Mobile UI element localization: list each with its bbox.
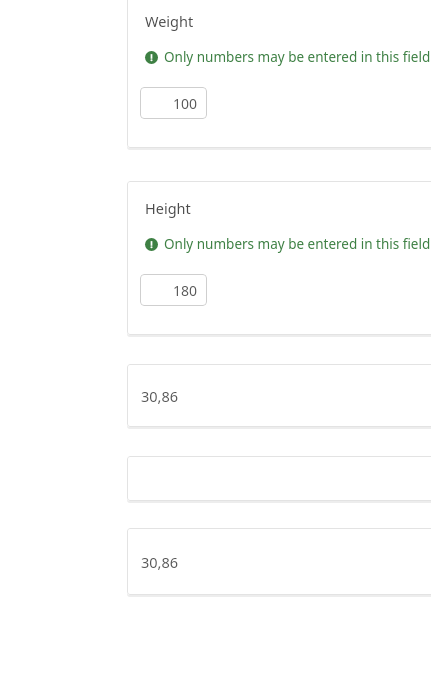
button[interactable]: 30,86 — [127, 364, 431, 427]
button[interactable]: Height — [127, 181, 431, 335]
staticText: Only numbers may be entered in this fiel… — [164, 48, 431, 66]
staticText: Weight — [145, 11, 194, 31]
button[interactable] — [127, 456, 431, 501]
button[interactable]: 100 — [140, 87, 207, 119]
staticText: 100 — [172, 94, 197, 113]
other: Warning — [145, 51, 158, 64]
staticText: 30,86 — [141, 386, 179, 406]
button[interactable]: 180 — [140, 274, 207, 306]
other: Warning — [145, 238, 158, 251]
staticText: Only numbers may be entered in this fiel… — [164, 235, 431, 253]
staticText: 30,86 — [141, 552, 179, 572]
staticText: 180 — [172, 281, 197, 300]
staticText: Height — [145, 198, 191, 218]
button[interactable]: 30,86 — [127, 528, 431, 595]
button[interactable]: Weight — [127, 0, 431, 148]
